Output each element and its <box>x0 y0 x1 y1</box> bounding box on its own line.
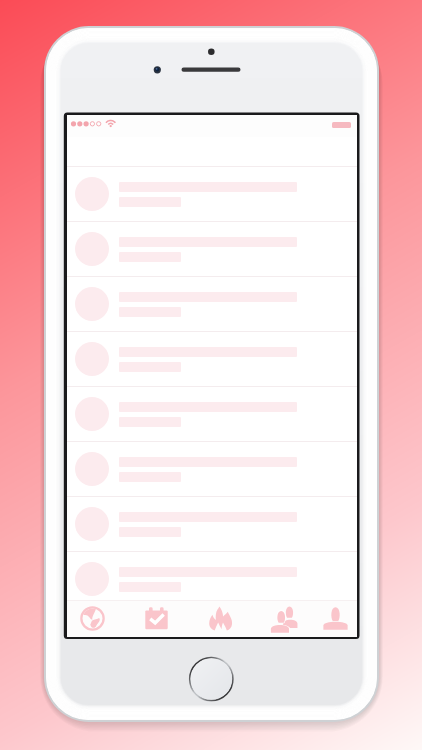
button[interactable] <box>67 332 357 386</box>
button[interactable] <box>67 277 357 331</box>
button[interactable] <box>67 552 357 606</box>
button[interactable] <box>67 167 357 221</box>
button[interactable] <box>67 497 357 551</box>
button[interactable] <box>67 222 357 276</box>
button[interactable]: Profile <box>306 600 364 637</box>
button[interactable]: Events <box>127 600 185 637</box>
button[interactable] <box>67 442 357 496</box>
button[interactable] <box>67 387 357 441</box>
button[interactable]: Discover <box>63 600 121 637</box>
button[interactable]: Trending <box>191 600 249 637</box>
button[interactable]: Friends <box>255 600 313 637</box>
